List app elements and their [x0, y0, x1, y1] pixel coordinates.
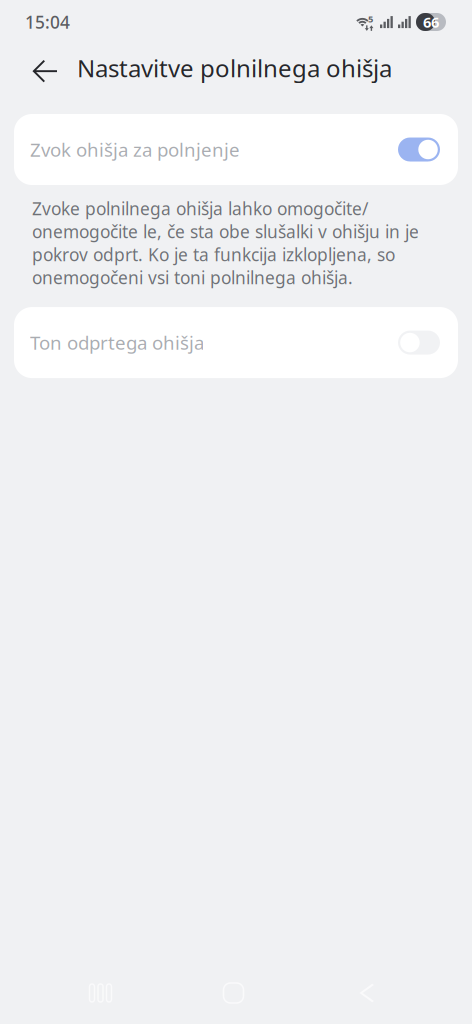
- staticText: Nastavitve polnilnega ohišja: [77, 52, 392, 84]
- button[interactable]: Back: [24, 44, 65, 92]
- staticText: Zvoke polnilnega ohišja lahko omogočite/…: [32, 197, 419, 289]
- staticText: 66: [423, 12, 439, 32]
- staticText: Zvok ohišja za polnjenje: [30, 137, 240, 162]
- staticText: 15:04: [25, 10, 70, 33]
- button[interactable]: Zvok ohišja za polnjenje: [14, 114, 458, 185]
- staticText: Ton odprtega ohišja: [30, 330, 204, 355]
- button[interactable]: Ton odprtega ohišja: [14, 307, 458, 378]
- staticText: 5: [368, 13, 373, 25]
